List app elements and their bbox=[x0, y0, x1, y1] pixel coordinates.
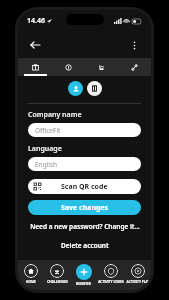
button[interactable]: Back bbox=[27, 37, 43, 53]
button[interactable]: Scan QR code bbox=[28, 179, 141, 194]
staticText: Language bbox=[28, 144, 62, 154]
button[interactable]: Need a new password? Change it... bbox=[28, 222, 141, 231]
staticText: Scan QR code bbox=[61, 182, 108, 192]
button[interactable]: English bbox=[28, 157, 141, 171]
button[interactable]: Company bbox=[87, 81, 102, 96]
staticText: HOME bbox=[26, 280, 36, 284]
staticText: 14.46 bbox=[27, 16, 45, 26]
button[interactable]: Tab 2 bbox=[52, 58, 85, 76]
button[interactable]: Tab 1 bbox=[18, 58, 52, 76]
staticText: CHALLENGES bbox=[47, 280, 68, 284]
staticText: Need a new password? Change it... bbox=[30, 222, 140, 231]
button[interactable]: Delete account bbox=[28, 241, 141, 250]
staticText: REGISTER bbox=[76, 282, 91, 286]
staticText: ACTIVITY PLAY bbox=[126, 280, 150, 284]
button[interactable]: OfficeFit bbox=[28, 123, 141, 137]
button[interactable]: More options bbox=[126, 37, 142, 53]
button[interactable]: HOME bbox=[18, 264, 44, 290]
button[interactable]: Register bbox=[70, 264, 97, 290]
staticText: Company name bbox=[28, 110, 82, 120]
button[interactable]: Profile bbox=[68, 81, 83, 96]
staticText: Delete account bbox=[61, 241, 109, 250]
staticText: OfficeFit bbox=[35, 126, 61, 135]
staticText: English bbox=[35, 160, 58, 169]
button[interactable]: CHALLENGES bbox=[44, 264, 70, 290]
button[interactable]: ACTIVITY CODES bbox=[97, 264, 124, 290]
button[interactable]: Tab 3 bbox=[85, 58, 118, 76]
staticText: Save changes bbox=[61, 203, 109, 213]
button[interactable]: ACTIVITY PLAY bbox=[124, 264, 151, 290]
button[interactable]: Tab 4 bbox=[118, 58, 151, 76]
button[interactable]: Save changes bbox=[28, 200, 141, 215]
staticText: ACTIVITY CODES bbox=[98, 280, 124, 284]
